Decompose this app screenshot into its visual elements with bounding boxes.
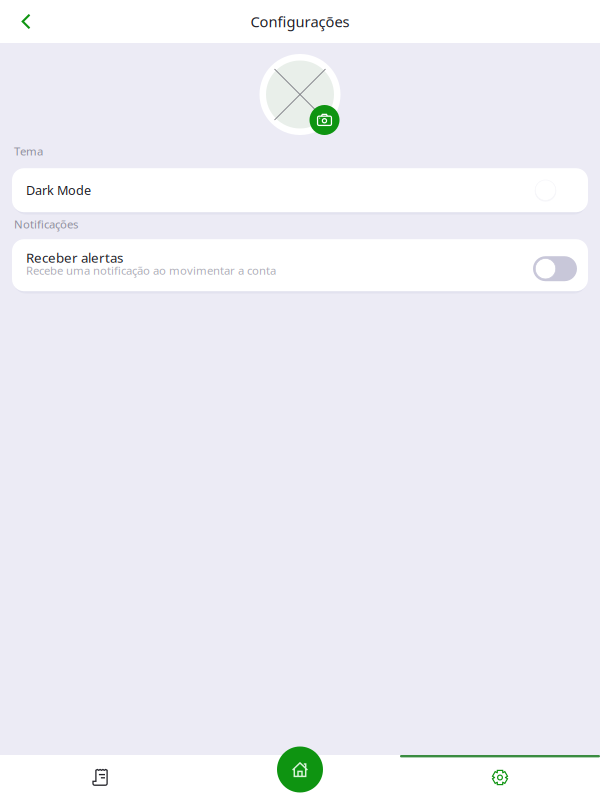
button[interactable]: Extrato [0, 755, 200, 800]
staticText: Receber alertas [26, 248, 123, 267]
button[interactable]: Voltar [0, 0, 52, 43]
staticText: Recebe uma notificação ao movimentar a c… [26, 263, 276, 278]
staticText: Notificações [14, 216, 78, 232]
staticText: Tema [14, 143, 43, 159]
button[interactable]: Início [277, 746, 323, 792]
button[interactable]: Início [200, 755, 400, 800]
staticText: Dark Mode [26, 182, 91, 199]
staticText: Configurações [250, 11, 349, 31]
button[interactable]: Dark Mode [12, 168, 588, 215]
button[interactable]: Receber alertas [12, 239, 588, 294]
button[interactable]: Configurações [400, 755, 600, 800]
button[interactable]: Alterar foto [259, 54, 341, 135]
